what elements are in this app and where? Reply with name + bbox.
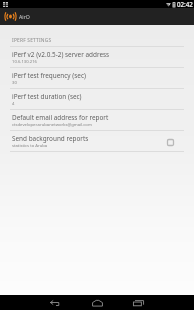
staticText: 30: [12, 80, 17, 86]
staticText: IPERF SETTINGS: [12, 37, 52, 44]
button[interactable]: iPerf test duration (sec): [0, 89, 194, 110]
button[interactable]: iPerf test frequency (sec): [0, 68, 194, 89]
staticText: iPerf test duration (sec): [12, 92, 82, 101]
button[interactable]: Back: [42, 295, 68, 310]
button[interactable]: Default email address for report: [0, 110, 194, 131]
button[interactable]: Send background reports: [0, 131, 194, 152]
button[interactable]: Send background reports checkbox: [167, 139, 174, 146]
button[interactable]: Recents: [125, 295, 151, 310]
staticText: Default email address for report: [12, 113, 109, 122]
staticText: Send background reports: [12, 134, 89, 143]
staticText: 4: [12, 101, 15, 107]
staticText: ctsdeveloper.arubanetworks@gmail.com: [12, 122, 92, 128]
staticText: 10.6.130.216: [12, 59, 37, 65]
staticText: iPerf test frequency (sec): [12, 71, 86, 80]
button[interactable]: iPerf v2 (v2.0.5-2) server address: [0, 47, 194, 68]
staticText: AirO: [19, 13, 30, 20]
staticText: statistics to Aruba: [12, 143, 48, 149]
button[interactable]: AirO: [0, 8, 194, 25]
staticText: 02:42: [177, 0, 193, 8]
staticText: iPerf v2 (v2.0.5-2) server address: [12, 50, 110, 59]
button[interactable]: Home: [84, 295, 110, 310]
